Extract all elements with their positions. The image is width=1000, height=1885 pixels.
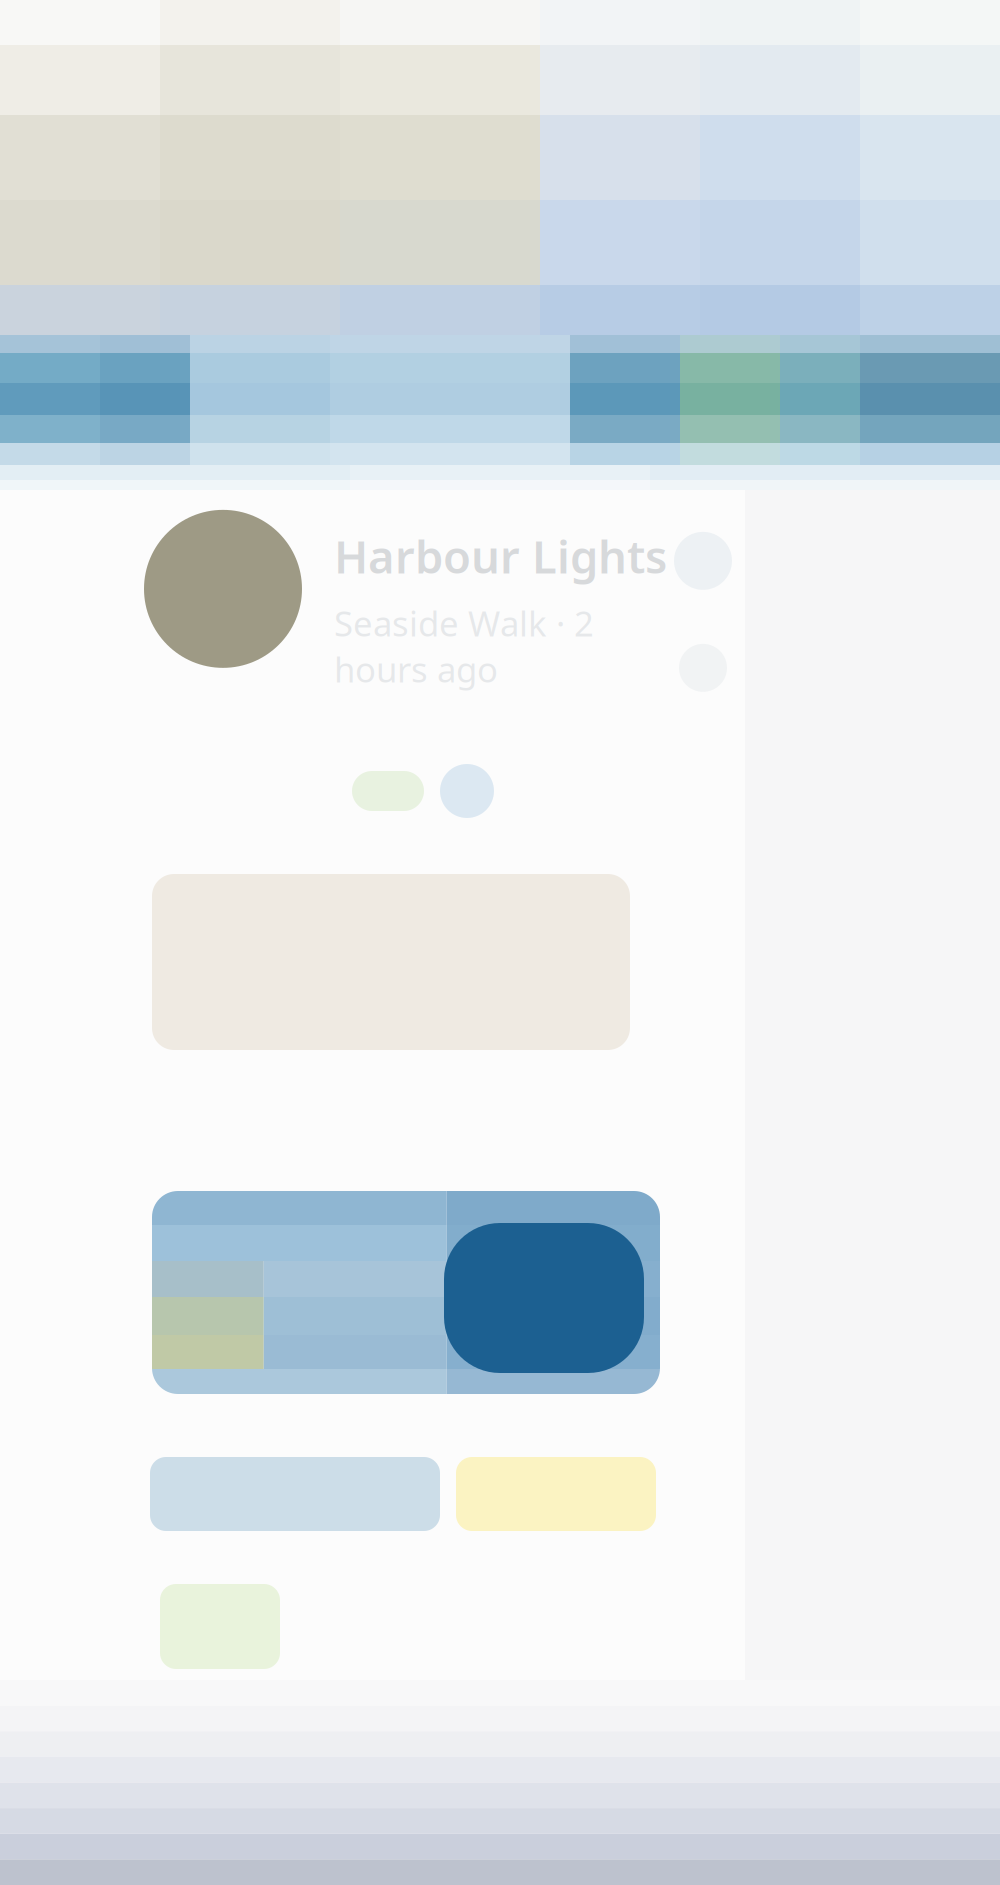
button[interactable]: Follow	[674, 532, 732, 590]
button[interactable]: More options	[679, 644, 727, 692]
staticText: Harbour Lights	[334, 526, 667, 586]
button[interactable]	[152, 1191, 660, 1394]
button[interactable]: Harbour Lights	[142, 510, 667, 692]
staticText: Seaside Walk · 2 hours ago	[334, 600, 594, 692]
